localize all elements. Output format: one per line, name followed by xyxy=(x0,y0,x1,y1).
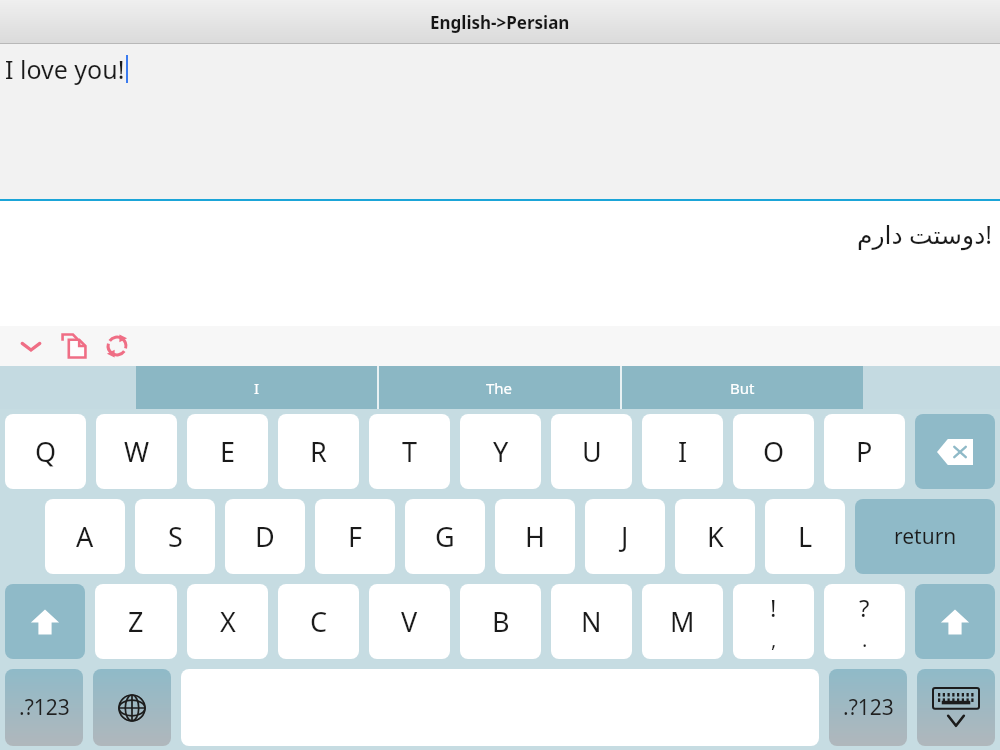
staticText: V xyxy=(401,603,418,640)
button[interactable]: K xyxy=(675,499,755,574)
staticText: The xyxy=(486,378,513,398)
staticText: O xyxy=(763,433,785,470)
staticText: C xyxy=(310,603,328,640)
button[interactable]: H xyxy=(495,499,575,574)
button[interactable]: .?123 xyxy=(5,669,83,746)
button[interactable]: Backspace xyxy=(915,414,995,489)
staticText: دوستت دارم! xyxy=(856,217,992,251)
staticText: English->Persian xyxy=(430,11,570,34)
button[interactable]: Switch keyboard language xyxy=(93,669,171,746)
button[interactable]: I xyxy=(136,366,377,409)
staticText: S xyxy=(168,518,183,555)
staticText: M xyxy=(670,603,695,640)
staticText: I love you! xyxy=(5,52,125,86)
button[interactable]: O xyxy=(733,414,814,489)
staticText: ! xyxy=(770,591,777,624)
button[interactable]: J xyxy=(585,499,665,574)
staticText: A xyxy=(76,518,94,555)
button[interactable]: Copy xyxy=(53,326,95,366)
staticText: I xyxy=(254,378,260,398)
button[interactable]: W xyxy=(96,414,177,489)
button[interactable]: Z xyxy=(95,584,177,659)
staticText: D xyxy=(255,518,275,555)
staticText: E xyxy=(220,433,236,470)
button[interactable]: U xyxy=(551,414,632,489)
staticText: But xyxy=(730,378,755,398)
staticText: B xyxy=(492,603,510,640)
button[interactable]: F xyxy=(315,499,395,574)
button[interactable]: E xyxy=(187,414,268,489)
staticText: W xyxy=(124,433,150,470)
staticText: H xyxy=(525,518,546,555)
button[interactable]: Shift xyxy=(5,584,85,659)
button[interactable]: M xyxy=(642,584,723,659)
button[interactable]: return xyxy=(855,499,995,574)
staticText: , xyxy=(771,626,777,653)
button[interactable]: But xyxy=(622,366,863,409)
staticText: G xyxy=(435,518,455,555)
staticText: R xyxy=(310,433,327,470)
staticText: . xyxy=(862,626,868,653)
staticText: J xyxy=(621,518,629,555)
button[interactable]: P xyxy=(824,414,905,489)
staticText: U xyxy=(582,433,602,470)
button[interactable]: V xyxy=(369,584,450,659)
staticText: X xyxy=(220,603,236,640)
staticText: .?123 xyxy=(19,693,70,722)
button[interactable]: .?123 xyxy=(829,669,907,746)
button[interactable]: S xyxy=(135,499,215,574)
button[interactable]: The xyxy=(379,366,620,409)
button[interactable]: C xyxy=(278,584,359,659)
staticText: P xyxy=(856,433,873,470)
button[interactable]: Hide keyboard xyxy=(917,669,995,746)
button[interactable]: Q xyxy=(5,414,86,489)
button[interactable]: ? xyxy=(824,584,905,659)
button[interactable]: R xyxy=(278,414,359,489)
staticText: L xyxy=(798,518,813,555)
button[interactable]: Y xyxy=(460,414,541,489)
button[interactable]: I xyxy=(642,414,723,489)
button[interactable]: N xyxy=(551,584,632,659)
button[interactable]: Collapse xyxy=(10,326,52,366)
staticText: F xyxy=(348,518,363,555)
staticText: return xyxy=(894,522,957,551)
staticText: Y xyxy=(493,433,509,470)
button[interactable]: ! xyxy=(733,584,814,659)
staticText: I xyxy=(678,433,688,470)
button[interactable]: L xyxy=(765,499,845,574)
staticText: T xyxy=(402,433,418,470)
button[interactable]: Swap languages xyxy=(96,326,138,366)
staticText: N xyxy=(581,603,602,640)
staticText: .?123 xyxy=(843,693,894,722)
button[interactable]: B xyxy=(460,584,541,659)
button[interactable]: A xyxy=(45,499,125,574)
staticText: Q xyxy=(35,433,57,470)
button[interactable]: T xyxy=(369,414,450,489)
staticText: ? xyxy=(859,591,870,624)
staticText: Z xyxy=(128,603,144,640)
button[interactable]: Shift xyxy=(915,584,995,659)
staticText: K xyxy=(707,518,724,555)
button[interactable]: X xyxy=(187,584,268,659)
button[interactable]: G xyxy=(405,499,485,574)
button[interactable]: D xyxy=(225,499,305,574)
